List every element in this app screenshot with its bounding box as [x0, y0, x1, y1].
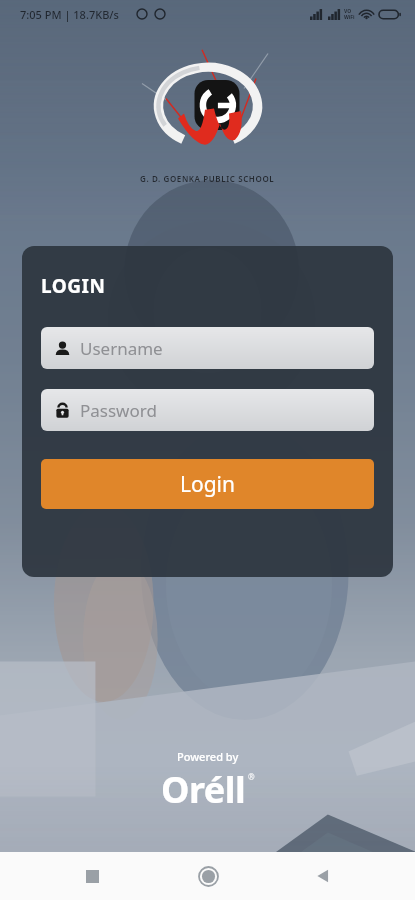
- staticText: G. D. GOENKA PUBLIC SCHOOL: [140, 173, 275, 184]
- staticText: ®: [248, 771, 255, 782]
- staticText: Username: [80, 337, 163, 360]
- button[interactable]: Back: [299, 852, 347, 900]
- button[interactable]: Username: [41, 327, 374, 369]
- staticText: Password: [80, 399, 157, 422]
- staticText: Login: [180, 470, 236, 499]
- staticText: Powered by: [177, 749, 239, 764]
- button[interactable]: Password: [41, 389, 374, 431]
- staticText: VO WiFi: [344, 8, 355, 21]
- staticText: Oréll: [161, 765, 246, 814]
- button[interactable]: Recent apps: [68, 852, 116, 900]
- button[interactable]: Home: [184, 852, 232, 900]
- staticText: LOGIN: [41, 273, 106, 299]
- staticText: 7:05 PM | 18.7KB/s: [20, 7, 119, 22]
- button[interactable]: Login: [41, 459, 374, 509]
